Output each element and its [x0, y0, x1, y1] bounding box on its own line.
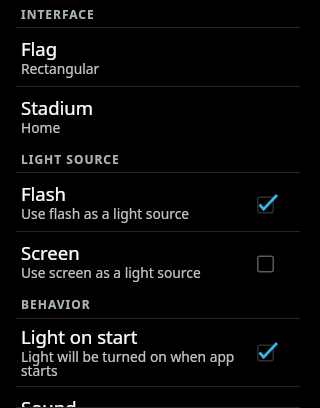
staticText: INTERFACE — [21, 6, 95, 22]
button[interactable]: Light on start — [0, 319, 320, 387]
button[interactable]: Sound — [0, 387, 320, 408]
staticText: Sound — [21, 395, 77, 408]
staticText: Use screen as a light source — [21, 263, 201, 282]
staticText: Flag — [21, 36, 58, 61]
button[interactable]: Flash — [0, 173, 320, 232]
staticText: Screen — [21, 240, 80, 265]
staticText: Use flash as a light source — [21, 204, 190, 223]
staticText: Flash — [21, 181, 67, 206]
staticText: Home — [21, 118, 61, 137]
staticText: Light on start — [21, 324, 138, 349]
staticText: Light will be turned on when app starts — [21, 347, 243, 380]
staticText: BEHAVIOR — [21, 296, 91, 312]
button[interactable]: Flag — [0, 28, 320, 87]
staticText: Stadium — [21, 95, 94, 120]
staticText: LIGHT SOURCE — [21, 151, 120, 167]
button[interactable]: Stadium — [0, 87, 320, 146]
button[interactable]: Screen — [0, 232, 320, 291]
staticText: Rectangular — [21, 59, 100, 78]
